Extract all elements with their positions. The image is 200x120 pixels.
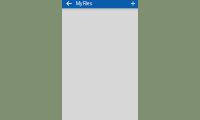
staticText: My Files	[76, 0, 92, 7]
button[interactable]: Add	[128, 0, 138, 9]
button[interactable]: Back	[64, 0, 74, 9]
